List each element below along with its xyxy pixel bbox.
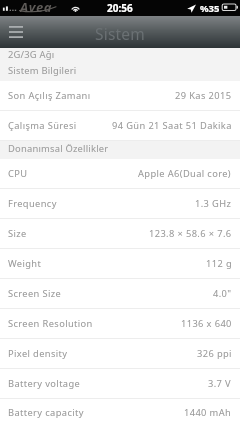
staticText: Battery capacity [8,406,84,419]
staticText: 4.0" [213,287,232,300]
button[interactable]: Çalışma Süresi [0,111,240,140]
staticText: 1136 x 640 [181,317,232,330]
staticText: 3.7 V [208,377,232,390]
staticText: 94 Gün 21 Saat 51 Dakika [112,119,232,132]
button[interactable]: Size [0,219,240,248]
staticText: 112 g [206,257,232,270]
staticText: 20:56 [107,1,133,15]
staticText: CPU [8,167,28,180]
button[interactable]: Battery voltage [0,369,240,398]
staticText: Screen Size [8,287,62,300]
button[interactable]: Pixel density [0,339,240,368]
staticText: Donanımsal Özellikler [8,142,109,155]
button[interactable]: Weight [0,249,240,278]
staticText: Battery voltage [8,377,81,390]
staticText: 326 ppi [197,347,232,360]
staticText: 29 Kas 2015 [175,89,232,102]
staticText: Sistem Bilgileri [8,64,77,77]
staticText: 123.8 × 58.6 × 7.6 [149,227,232,240]
staticText: Çalışma Süresi [8,119,77,132]
staticText: Screen Resolution [8,317,93,330]
button[interactable]: Battery capacity [0,399,240,426]
staticText: 1.3 GHz [195,197,232,210]
staticText: Pixel density [8,347,68,360]
staticText: Apple A6(Dual core) [138,167,232,180]
button[interactable]: Screen Size [0,279,240,308]
staticText: 2G/3G Ağı [8,48,55,61]
staticText: 1440 mAh [184,406,232,419]
button[interactable]: Son Açılış Zamanı [0,81,240,110]
staticText: Avea [20,0,53,14]
button[interactable]: CPU [0,159,240,188]
button[interactable]: Menu [3,16,29,48]
staticText: Weight [8,257,42,270]
staticText: Frequency [8,197,57,210]
staticText: Sistem [95,23,145,44]
staticText: Son Açılış Zamanı [8,89,91,102]
button[interactable]: Frequency [0,189,240,218]
staticText: %35 [200,2,220,15]
staticText: Size [8,227,27,240]
button[interactable]: Screen Resolution [0,309,240,338]
